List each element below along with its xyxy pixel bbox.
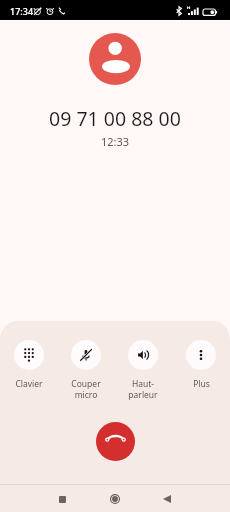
staticText: Clavier	[15, 378, 43, 390]
staticText: Haut- parleur	[128, 378, 158, 400]
staticText: Plus	[193, 378, 210, 390]
button[interactable]: Haut-parleur	[114, 340, 172, 400]
button[interactable]: Couper micro	[57, 340, 114, 400]
button[interactable]: Home	[88, 484, 141, 512]
staticText: 09 71 00 88 00	[49, 105, 181, 132]
staticText: 17:34	[10, 5, 34, 17]
button[interactable]: Raccrocher	[96, 422, 135, 461]
staticText: 12:33	[101, 134, 130, 149]
button[interactable]: Plus	[172, 340, 230, 390]
button[interactable]: Back	[141, 484, 193, 512]
staticText: Couper micro	[71, 378, 101, 400]
button[interactable]: Clavier	[0, 340, 57, 390]
other: Haut-parleur	[128, 340, 158, 370]
other: Clavier	[14, 340, 44, 370]
button[interactable]: Recents	[36, 484, 88, 512]
other: Couper micro	[71, 340, 101, 370]
other: Plus	[186, 340, 216, 370]
